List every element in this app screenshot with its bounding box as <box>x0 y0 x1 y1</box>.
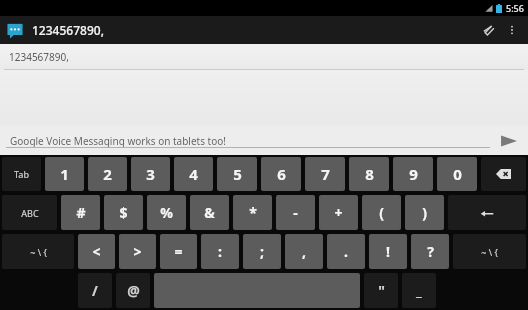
staticText: 5 <box>233 164 242 184</box>
button[interactable]: * <box>233 195 272 230</box>
staticText: ? <box>427 242 434 261</box>
button[interactable]: 4 <box>174 157 213 191</box>
button[interactable]: ( <box>362 195 401 230</box>
staticText: > <box>133 242 142 261</box>
button[interactable]: 2 <box>88 157 127 191</box>
staticText: # <box>76 203 86 222</box>
staticText: ~ \ { <box>30 246 47 258</box>
staticText: 2 <box>103 164 112 184</box>
button[interactable]: 1234567890, <box>0 44 528 70</box>
button[interactable]: 0 <box>437 157 477 191</box>
staticText: 3 <box>146 164 155 184</box>
button[interactable]: 5 <box>217 157 257 191</box>
staticText: - <box>293 203 298 222</box>
staticText: . <box>344 242 348 261</box>
staticText: & <box>204 203 215 222</box>
button[interactable]: _ <box>402 273 436 308</box>
staticText: ) <box>422 203 427 222</box>
button[interactable]: = <box>160 234 197 269</box>
staticText: ! <box>386 242 390 261</box>
staticText: 1234567890, <box>9 50 69 64</box>
button[interactable]: App icon <box>6 21 24 39</box>
button[interactable]: Backspace <box>481 157 526 191</box>
staticText: 8 <box>365 164 374 184</box>
button[interactable]: ) <box>405 195 444 230</box>
button[interactable]: . <box>327 234 365 269</box>
button[interactable]: Send <box>496 129 522 153</box>
staticText: 1234567890, <box>32 22 104 38</box>
button[interactable]: Google Voice Messaging works on tablets … <box>6 134 490 148</box>
button[interactable]: 7 <box>305 157 345 191</box>
button[interactable]: + <box>319 195 358 230</box>
button[interactable]: 9 <box>393 157 433 191</box>
button[interactable]: ? <box>411 234 449 269</box>
staticText: = <box>174 242 183 261</box>
button[interactable]: 6 <box>261 157 301 191</box>
staticText: , <box>302 242 306 261</box>
staticText: @ <box>127 281 140 300</box>
button[interactable]: < <box>78 234 115 269</box>
button[interactable]: & <box>190 195 229 230</box>
button[interactable]: Enter <box>448 195 526 230</box>
staticText: 5:56 <box>506 2 524 14</box>
button[interactable]: Attach <box>476 18 500 42</box>
staticText: ~ \ { <box>481 246 498 258</box>
button[interactable]: - <box>276 195 315 230</box>
staticText: ; <box>260 242 264 261</box>
button[interactable]: 3 <box>131 157 170 191</box>
button[interactable]: $ <box>104 195 143 230</box>
staticText: 4 <box>189 164 198 184</box>
staticText: " <box>378 281 385 300</box>
button[interactable]: / <box>78 273 112 308</box>
button[interactable]: " <box>364 273 398 308</box>
staticText: 9 <box>409 164 418 184</box>
button[interactable]: % <box>147 195 186 230</box>
button[interactable]: ; <box>243 234 281 269</box>
staticText: Google Voice Messaging works on tablets … <box>10 134 226 148</box>
button[interactable]: ABC <box>2 195 57 230</box>
button[interactable]: 8 <box>349 157 389 191</box>
button[interactable]: More options <box>502 20 522 40</box>
staticText: * <box>249 203 257 222</box>
button[interactable]: ~ \ { <box>453 234 526 269</box>
button[interactable]: Tab <box>2 157 41 191</box>
staticText: $ <box>119 203 128 222</box>
button[interactable]: ! <box>369 234 407 269</box>
staticText: 6 <box>277 164 286 184</box>
staticText: < <box>92 242 101 261</box>
button[interactable]: 1 <box>45 157 84 191</box>
staticText: % <box>160 203 173 222</box>
button[interactable]: ~ \ { <box>2 234 74 269</box>
staticText: _ <box>416 281 422 300</box>
button[interactable]: : <box>201 234 239 269</box>
staticText: : <box>218 242 222 261</box>
staticText: 1 <box>60 164 69 184</box>
button[interactable]: # <box>61 195 100 230</box>
button[interactable]: @ <box>116 273 150 308</box>
button[interactable]: > <box>119 234 156 269</box>
staticText: ( <box>379 203 384 222</box>
staticText: Tab <box>14 168 29 180</box>
button[interactable]: , <box>285 234 323 269</box>
staticText: 7 <box>321 164 330 184</box>
staticText: 0 <box>453 164 462 184</box>
staticText: / <box>92 281 98 300</box>
staticText: + <box>334 203 343 222</box>
staticText: ABC <box>21 207 39 219</box>
